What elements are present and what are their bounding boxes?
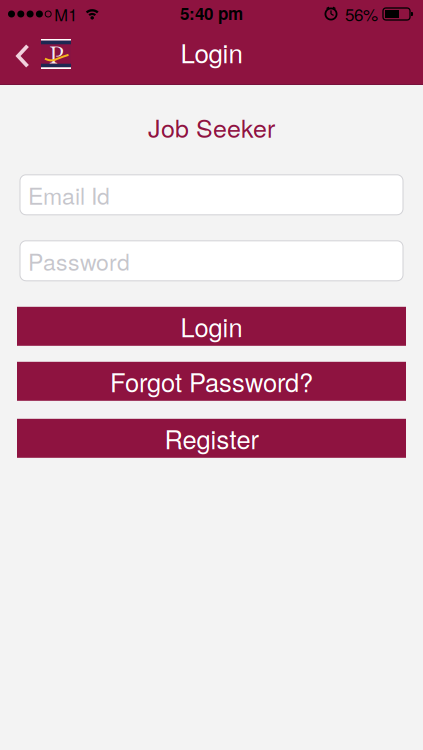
staticText: M1 bbox=[54, 2, 77, 26]
button[interactable]: Back bbox=[0, 44, 30, 68]
staticText: Register bbox=[164, 420, 258, 456]
staticText: 56% bbox=[345, 2, 378, 26]
button[interactable]: Login bbox=[17, 307, 406, 346]
button[interactable]: Register bbox=[17, 419, 406, 458]
staticText: 5:40 pm bbox=[180, 1, 243, 25]
staticText: P bbox=[49, 37, 64, 71]
staticText: Email Id bbox=[28, 178, 110, 211]
staticText: Login bbox=[180, 33, 242, 71]
staticText: Password bbox=[28, 244, 130, 277]
staticText: Forgot Password? bbox=[110, 363, 313, 399]
staticText: Job Seeker bbox=[148, 109, 275, 145]
staticText: Login bbox=[180, 308, 242, 344]
button[interactable]: Forgot Password? bbox=[17, 362, 406, 401]
